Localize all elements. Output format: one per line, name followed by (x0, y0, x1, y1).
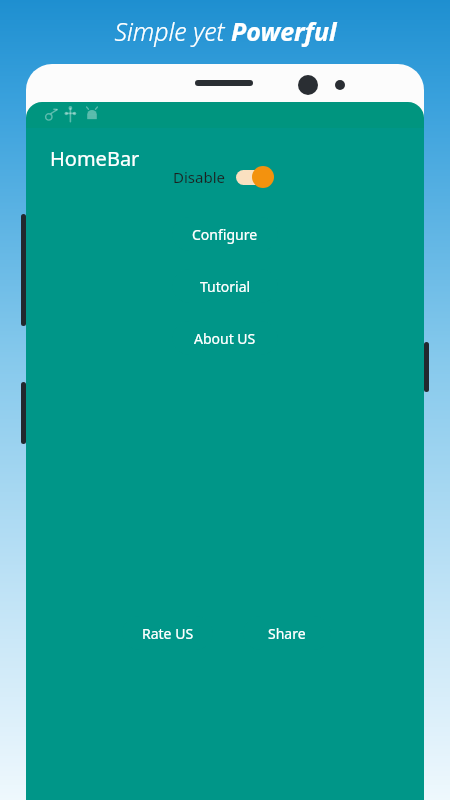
staticText: Simple yet Powerful (114, 14, 337, 48)
button[interactable]: About US (172, 321, 278, 355)
staticText: Share (268, 624, 306, 643)
button[interactable] (236, 166, 274, 188)
staticText: About US (194, 329, 256, 348)
button[interactable]: Share (243, 616, 331, 650)
staticText: Tutorial (200, 277, 251, 296)
staticText: HomeBar (50, 145, 140, 172)
button[interactable]: Configure (172, 217, 278, 251)
staticText: Disable (173, 167, 225, 187)
staticText: Configure (192, 225, 258, 244)
button[interactable]: Rate US (122, 616, 213, 650)
button[interactable]: Tutorial (172, 269, 278, 303)
staticText: Rate US (142, 624, 194, 643)
